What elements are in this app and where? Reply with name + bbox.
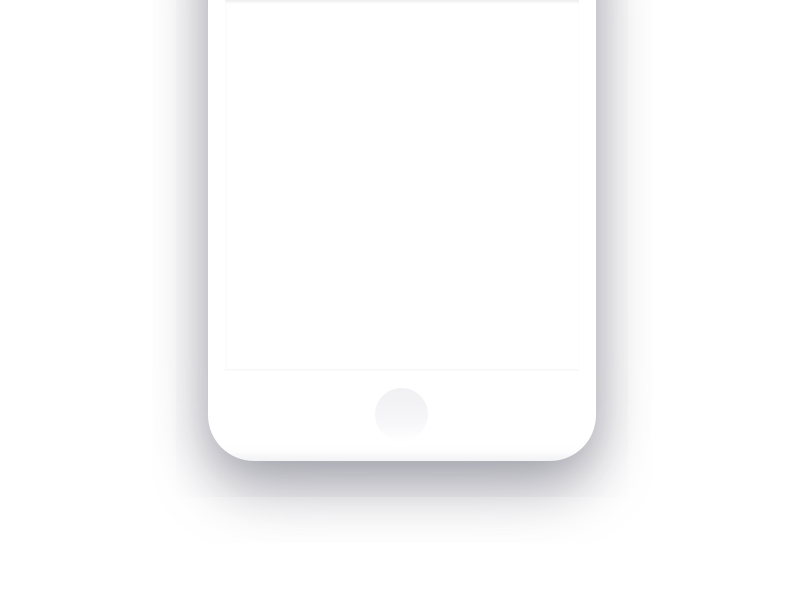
button[interactable]: Home [375, 388, 428, 441]
